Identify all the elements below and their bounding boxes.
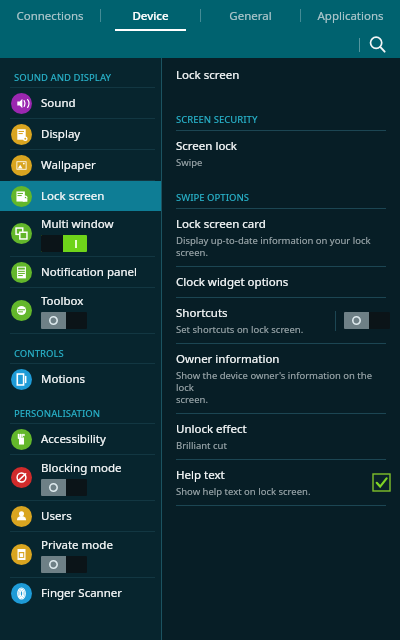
staticText: Accessibility (41, 431, 106, 447)
button[interactable]: Screen lock (162, 131, 400, 176)
button[interactable]: Lock screen (0, 181, 161, 211)
button[interactable]: Multi window (0, 211, 161, 256)
staticText: SOUND AND DISPLAY (14, 71, 112, 84)
staticText: Wallpaper (41, 157, 96, 173)
staticText: Motions (41, 371, 86, 387)
button[interactable]: Unlock effect (162, 414, 400, 459)
button[interactable]: Toolbox (0, 288, 161, 333)
staticText: Users (41, 508, 72, 524)
button[interactable]: General (201, 0, 300, 31)
staticText: PERSONALISATION (14, 407, 101, 420)
staticText: Lock screen (176, 67, 240, 83)
staticText: SCREEN SECURITY (176, 113, 258, 126)
button[interactable]: Finger Scanner (0, 578, 161, 608)
button[interactable]: Clock widget options (162, 267, 400, 297)
staticText: Screen lock (176, 138, 238, 154)
button[interactable]: Off (344, 312, 390, 329)
staticText: Multi window (41, 216, 114, 232)
button[interactable]: Search (360, 31, 394, 58)
button[interactable]: Wallpaper (0, 150, 161, 180)
staticText: Clock widget options (176, 274, 289, 290)
staticText: Show the device owner's information on t… (176, 369, 390, 406)
staticText: Display (41, 126, 81, 142)
staticText: Set shortcuts on lock screen. (176, 323, 304, 336)
staticText: Brilliant cut (176, 439, 227, 452)
button[interactable]: Accessibility (0, 424, 161, 454)
staticText: Notification panel (41, 264, 137, 280)
staticText: Unlock effect (176, 421, 247, 437)
staticText: CONTROLS (14, 347, 64, 360)
button[interactable]: Users (0, 501, 161, 531)
staticText: Private mode (41, 537, 113, 553)
staticText: Blocking mode (41, 460, 122, 476)
staticText: Toolbox (41, 293, 84, 309)
button[interactable]: Private mode (0, 532, 161, 577)
staticText: Sound (41, 95, 76, 111)
button[interactable]: Owner information (162, 344, 400, 413)
staticText: SWIPE OPTIONS (176, 191, 250, 204)
button[interactable]: Off (41, 556, 87, 573)
button[interactable]: Notification panel (0, 257, 161, 287)
button[interactable]: Connections (0, 0, 100, 31)
button[interactable]: Help text enabled (373, 474, 390, 491)
staticText: Shortcuts (176, 305, 228, 321)
button[interactable]: Applications (301, 0, 400, 31)
staticText: Show help text on lock screen. (176, 485, 311, 498)
button[interactable]: Shortcuts (162, 298, 400, 343)
button[interactable]: Display (0, 119, 161, 149)
staticText: Lock screen (41, 188, 105, 204)
button[interactable]: Blocking mode (0, 455, 161, 500)
staticText: Device (132, 8, 169, 24)
staticText: Lock screen card (176, 216, 266, 232)
staticText: Display up-to-date information on your l… (176, 234, 371, 259)
button[interactable]: Motions (0, 364, 161, 394)
button[interactable]: Sound (0, 88, 161, 118)
button[interactable]: Help text (162, 460, 400, 505)
staticText: General (229, 8, 272, 24)
staticText: Applications (317, 8, 384, 24)
staticText: Swipe (176, 156, 203, 169)
button[interactable]: Off (41, 312, 87, 329)
staticText: Owner information (176, 351, 280, 367)
button[interactable]: On (41, 235, 87, 252)
button[interactable]: Off (41, 479, 87, 496)
staticText: Help text (176, 467, 225, 483)
button[interactable]: Lock screen card (162, 209, 400, 266)
button[interactable]: Device (101, 0, 200, 31)
staticText: Connections (16, 8, 84, 24)
staticText: Finger Scanner (41, 585, 123, 601)
